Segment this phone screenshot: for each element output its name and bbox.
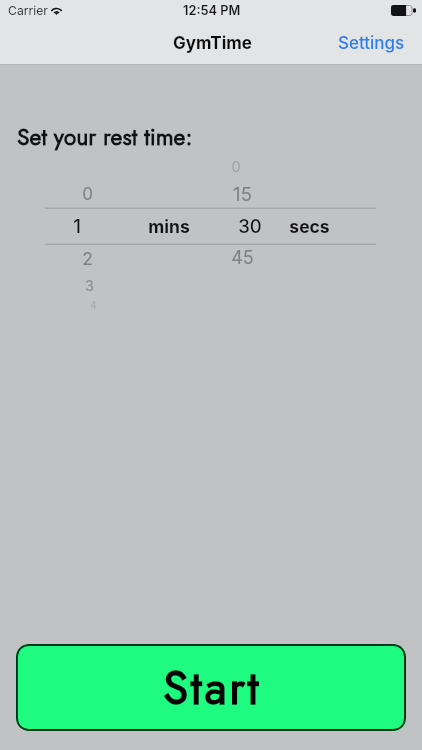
staticText: Set your rest time: (17, 120, 193, 153)
staticText: 1 (73, 215, 81, 237)
staticText: 0 (82, 184, 93, 205)
staticText: mins (148, 216, 190, 237)
staticText: 12:54 PM (183, 3, 241, 18)
other: Wi-Fi signal (50, 5, 63, 15)
staticText: Start (163, 655, 262, 721)
staticText: 15 (233, 183, 252, 205)
staticText: 30 (238, 215, 262, 237)
staticText: GymTime (173, 33, 252, 54)
staticText: 2 (82, 248, 93, 269)
button[interactable]: Settings (324, 22, 419, 63)
staticText: secs (289, 216, 330, 237)
staticText: Carrier (8, 3, 48, 18)
button[interactable]: Start (16, 644, 406, 731)
staticText: Settings (338, 33, 405, 54)
staticText: 4 (90, 299, 97, 311)
staticText: 3 (85, 277, 94, 295)
staticText: 0 (231, 158, 241, 176)
other: Battery level (391, 5, 416, 16)
staticText: 45 (231, 247, 254, 269)
